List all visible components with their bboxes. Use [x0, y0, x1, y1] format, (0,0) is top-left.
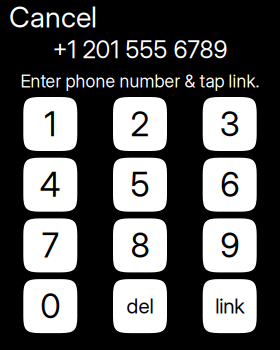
- staticText: 4: [40, 164, 61, 205]
- button[interactable]: 1: [23, 97, 77, 151]
- button[interactable]: Cancel: [0, 0, 129, 31]
- staticText: 6: [220, 164, 239, 205]
- button[interactable]: 9: [203, 218, 257, 272]
- staticText: 5: [130, 164, 149, 205]
- button[interactable]: 5: [113, 158, 167, 212]
- button[interactable]: link: [203, 279, 257, 333]
- button[interactable]: 3: [203, 97, 257, 151]
- staticText: link: [215, 294, 244, 319]
- button[interactable]: 0: [23, 279, 77, 333]
- staticText: 8: [130, 225, 149, 265]
- staticText: 9: [220, 225, 239, 265]
- button[interactable]: 2: [113, 97, 167, 151]
- staticText: +1 201 555 6789: [52, 35, 227, 64]
- staticText: 1: [44, 104, 56, 144]
- staticText: 3: [220, 104, 240, 144]
- button[interactable]: del: [113, 279, 167, 333]
- button[interactable]: 6: [203, 158, 257, 212]
- staticText: Cancel: [9, 0, 97, 34]
- staticText: 7: [42, 225, 59, 265]
- button[interactable]: 8: [113, 218, 167, 272]
- staticText: 0: [40, 286, 60, 326]
- staticText: Enter phone number & tap link.: [20, 70, 259, 92]
- staticText: del: [126, 294, 153, 319]
- button[interactable]: 7: [23, 218, 77, 272]
- button[interactable]: 4: [23, 158, 77, 212]
- staticText: 2: [130, 104, 149, 144]
